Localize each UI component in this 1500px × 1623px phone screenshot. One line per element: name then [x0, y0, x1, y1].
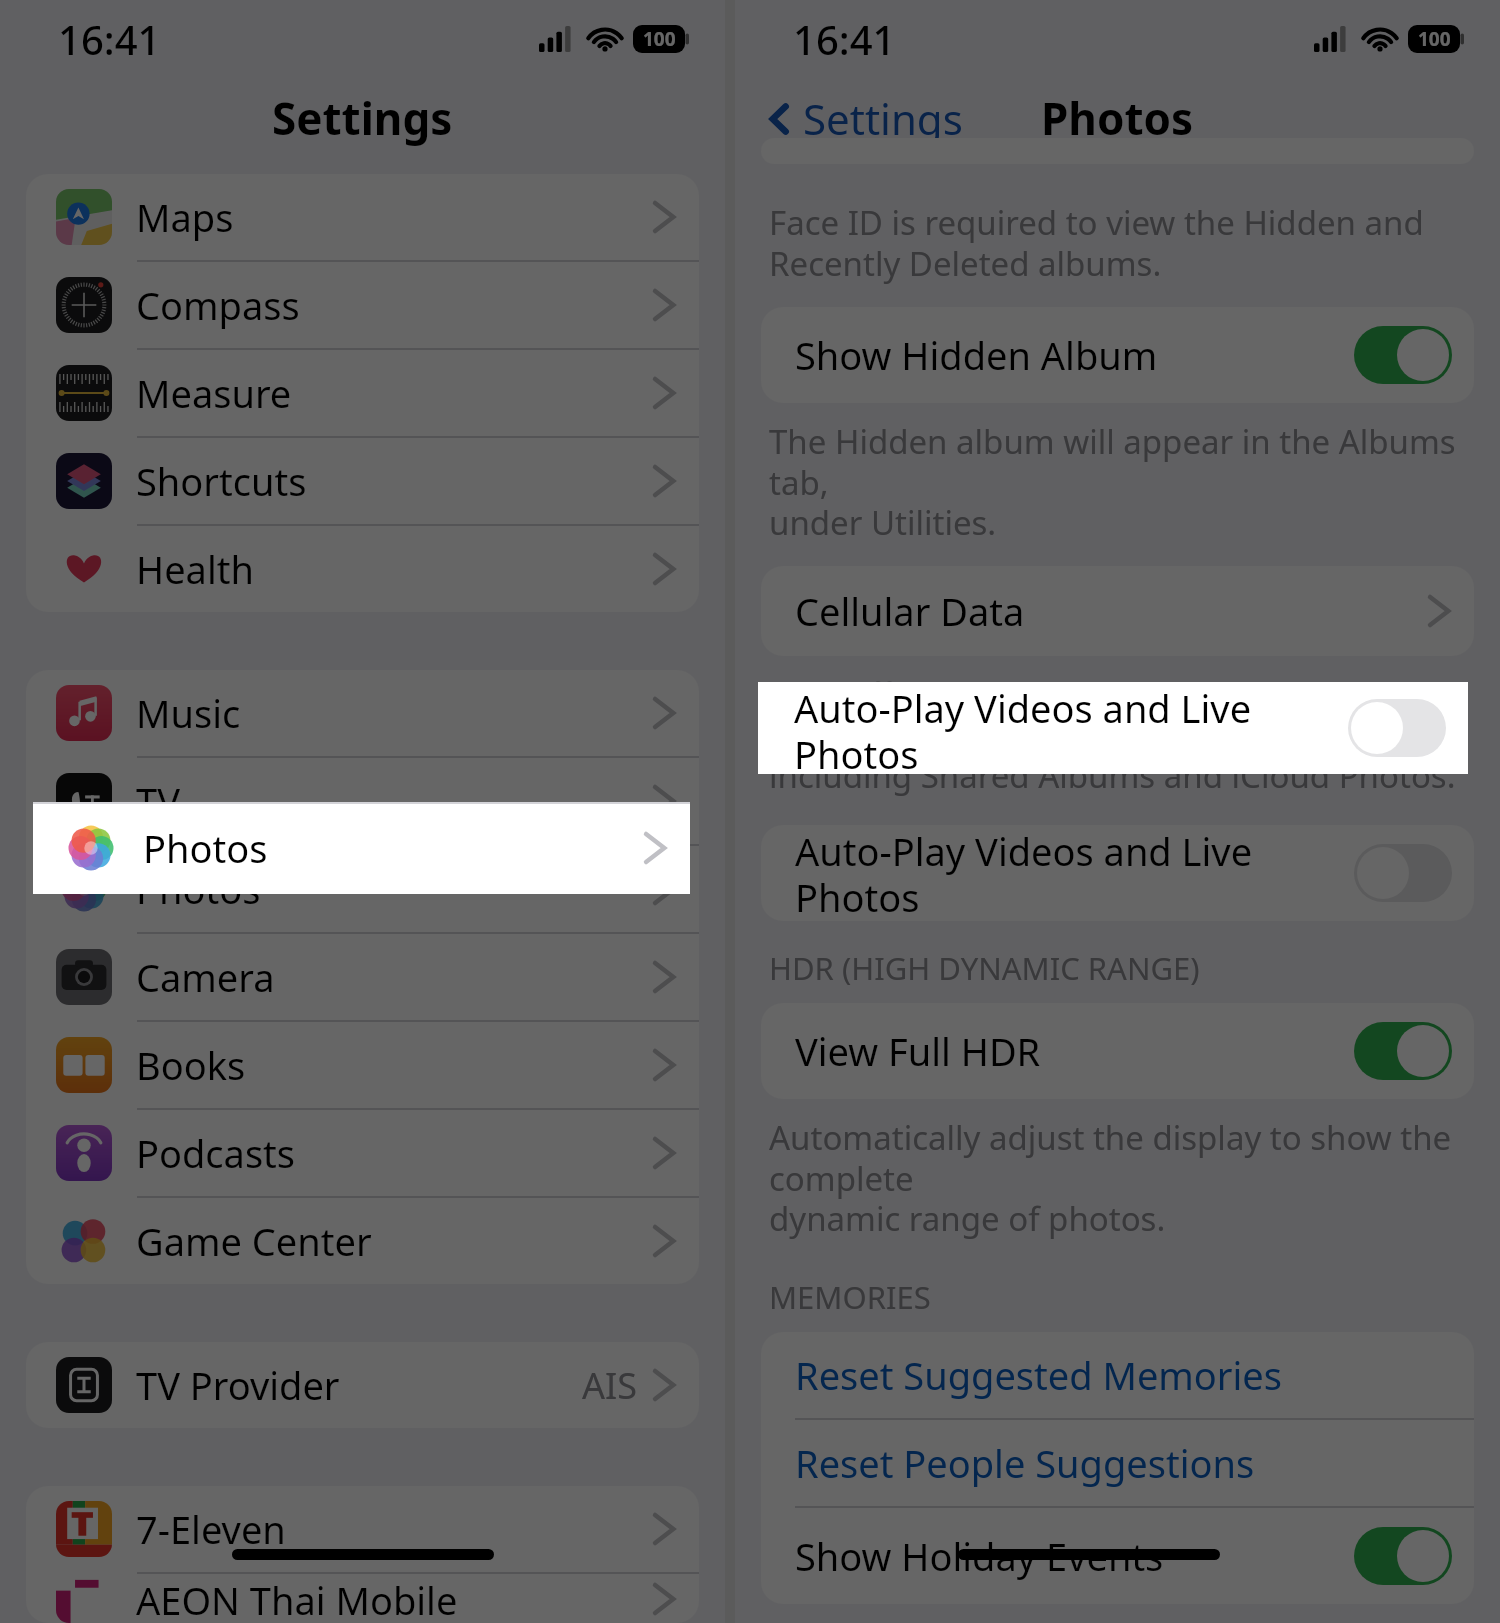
- staticText: MEMORIES: [769, 1276, 931, 1318]
- staticText: Books: [136, 1039, 651, 1091]
- staticText: TV: [136, 775, 651, 827]
- button[interactable]: Show Hidden Album: [761, 307, 1474, 403]
- button[interactable]: Toggle on: [1354, 1527, 1452, 1585]
- button[interactable]: Music: [26, 670, 699, 758]
- staticText: Automatically adjust the display to show…: [769, 1115, 1460, 1240]
- button[interactable]: View Full HDR: [761, 1003, 1474, 1099]
- staticText: The Hidden album will appear in the Albu…: [769, 419, 1460, 544]
- staticText: TV Provider: [136, 1359, 582, 1411]
- button[interactable]: Settings: [759, 84, 971, 153]
- staticText: AIS: [582, 1361, 637, 1410]
- button[interactable]: Podcasts: [26, 1110, 699, 1198]
- staticText: Measure: [136, 367, 651, 419]
- staticText: Cellular Data: [795, 585, 1426, 637]
- staticText: Shortcuts: [136, 455, 651, 507]
- button[interactable]: Health: [26, 526, 699, 612]
- staticText: HDR (HIGH DYNAMIC RANGE): [769, 947, 1200, 989]
- staticText: Health: [136, 543, 651, 595]
- button[interactable]: Toggle on: [1354, 326, 1452, 384]
- staticText: 16:41: [58, 12, 161, 66]
- button[interactable]: Cellular Data: [761, 566, 1474, 656]
- button[interactable]: Reset People Suggestions: [761, 1420, 1474, 1508]
- button[interactable]: Compass: [26, 262, 699, 350]
- staticText: Camera: [136, 951, 651, 1003]
- button[interactable]: 7-Eleven: [26, 1486, 699, 1574]
- staticText: Photos: [1041, 88, 1194, 148]
- staticText: Reset Suggested Memories: [795, 1349, 1282, 1401]
- button[interactable]: Auto-Play Videos and Live Photos: [761, 825, 1474, 921]
- button[interactable]: AEON Thai Mobile: [26, 1574, 699, 1623]
- staticText: Face ID is required to view the Hidden a…: [769, 200, 1424, 285]
- staticText: Photos: [136, 863, 651, 915]
- button[interactable]: Measure: [26, 350, 699, 438]
- staticText: Auto-Play Videos and Live Photos: [794, 682, 1348, 774]
- staticText: Compass: [136, 279, 651, 331]
- button[interactable]: Photos: [26, 846, 699, 934]
- staticText: Settings: [272, 88, 453, 148]
- staticText: Game Center: [136, 1215, 651, 1267]
- button[interactable]: Shortcuts: [26, 438, 699, 526]
- staticText: Music: [136, 687, 651, 739]
- staticText: Maps: [136, 191, 651, 243]
- staticText: Podcasts: [136, 1127, 651, 1179]
- button[interactable]: Reset Suggested Memories: [761, 1332, 1474, 1420]
- button[interactable]: TV Provider: [26, 1342, 699, 1428]
- staticText: Photos: [143, 822, 642, 874]
- button[interactable]: Camera: [26, 934, 699, 1022]
- button[interactable]: Maps: [26, 174, 699, 262]
- staticText: Turn off cellular data to restrict updat…: [769, 672, 1460, 797]
- button[interactable]: Show Holiday Events: [761, 1508, 1474, 1604]
- staticText: 100: [643, 26, 676, 52]
- button[interactable]: Toggle off: [1348, 699, 1446, 757]
- staticText: Settings: [803, 90, 963, 147]
- staticText: Reset People Suggestions: [795, 1437, 1255, 1489]
- staticText: Show Hidden Album: [795, 329, 1354, 381]
- staticText: 100: [1418, 26, 1451, 52]
- button[interactable]: TV: [26, 758, 699, 846]
- button[interactable]: Toggle on: [1354, 1022, 1452, 1080]
- staticText: AEON Thai Mobile: [136, 1574, 651, 1623]
- button[interactable]: Game Center: [26, 1198, 699, 1284]
- staticText: Show Holiday Events: [795, 1530, 1354, 1582]
- button[interactable]: Books: [26, 1022, 699, 1110]
- staticText: 7-Eleven: [136, 1503, 651, 1555]
- staticText: View Full HDR: [795, 1025, 1354, 1077]
- staticText: Auto-Play Videos and Live Photos: [795, 825, 1354, 921]
- button[interactable]: Toggle off: [1354, 844, 1452, 902]
- staticText: 16:41: [793, 12, 896, 66]
